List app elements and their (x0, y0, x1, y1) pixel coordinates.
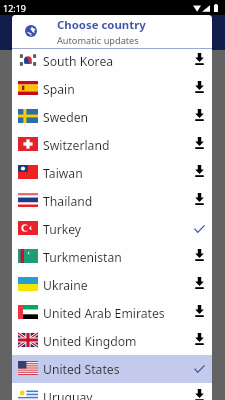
button[interactable]: Uruguay (12, 383, 212, 400)
button[interactable]: Sweden (12, 103, 212, 131)
staticText: South Korea (43, 53, 186, 70)
staticText: Switzerland (43, 137, 186, 154)
staticText: Thailand (43, 193, 186, 210)
other: Selected Turkey (186, 215, 212, 243)
button[interactable]: Spain (12, 75, 212, 103)
button[interactable]: Switzerland (12, 131, 212, 159)
button[interactable]: United Kingdom (12, 327, 212, 355)
button[interactable]: Ukraine (12, 271, 212, 299)
button[interactable]: Thailand (12, 187, 212, 215)
staticText: Sweden (43, 109, 186, 126)
staticText: Turkey (43, 221, 186, 238)
staticText: Choose country (57, 17, 146, 33)
staticText: Spain (43, 81, 186, 98)
button[interactable]: Turkey (12, 215, 212, 243)
other: Download Ukraine (186, 271, 212, 299)
other: Download Switzerland (186, 131, 212, 159)
staticText: Turkmenistan (43, 249, 186, 266)
other: Download Thailand (186, 187, 212, 215)
staticText: 12:19 (3, 2, 27, 14)
staticText: Taiwan (43, 165, 186, 182)
button[interactable]: Taiwan (12, 159, 212, 187)
button[interactable]: United Arab Emirates (12, 299, 212, 327)
other: Download Spain (186, 75, 212, 103)
other: Download South Korea (186, 49, 212, 75)
other: Download Uruguay (186, 383, 212, 400)
staticText: Ukraine (43, 277, 186, 294)
other: Download Turkmenistan (186, 243, 212, 271)
button[interactable]: Turkmenistan (12, 243, 212, 271)
other: Download United Kingdom (186, 327, 212, 355)
button[interactable]: Choose country (12, 15, 212, 48)
button[interactable]: South Korea (12, 49, 212, 75)
staticText: Uruguay (43, 389, 186, 400)
other: Download Sweden (186, 103, 212, 131)
button[interactable]: United States (12, 355, 212, 383)
staticText: United Arab Emirates (43, 305, 186, 322)
staticText: United States (43, 361, 186, 378)
staticText: Automatic updates (57, 34, 139, 47)
staticText: United Kingdom (43, 333, 186, 350)
other: Selected United States (186, 355, 212, 383)
other: Download Taiwan (186, 159, 212, 187)
other: Download United Arab Emirates (186, 299, 212, 327)
